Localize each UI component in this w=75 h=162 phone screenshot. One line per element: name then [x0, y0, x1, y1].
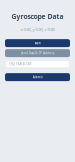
staticText: x 0.00, y 0.00, z 0.00 — [20, 27, 54, 32]
staticText: Gyroscope Data — [11, 12, 63, 21]
button[interactable]: Send Data To IP Address — [5, 49, 70, 57]
button[interactable]: Start — [5, 39, 70, 47]
staticText: Start — [34, 41, 40, 45]
staticText: Send Data To IP Address — [21, 51, 54, 55]
staticText: Submit — [32, 75, 42, 79]
staticText: 192.168.0.101 — [9, 62, 32, 66]
button[interactable]: Submit — [5, 73, 70, 81]
